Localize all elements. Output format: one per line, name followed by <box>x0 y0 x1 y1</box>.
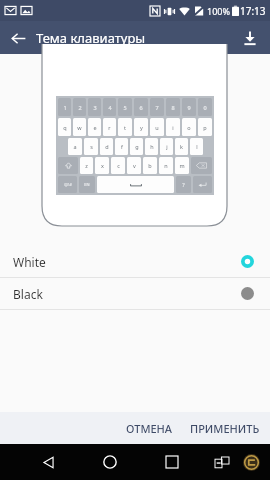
button[interactable]: r <box>103 118 116 136</box>
staticText: k <box>180 143 183 150</box>
button[interactable]: Back <box>30 444 66 480</box>
button[interactable]: 2 <box>73 98 86 116</box>
button[interactable]: 7 <box>150 98 164 116</box>
button[interactable]: o <box>182 118 196 136</box>
staticText: n <box>164 162 168 169</box>
staticText: 5 <box>123 104 127 111</box>
button[interactable]: y <box>134 118 148 136</box>
button[interactable]: ОТМЕНА <box>117 412 182 444</box>
button[interactable]: Black <box>0 278 270 309</box>
button[interactable]: White <box>0 246 270 277</box>
staticText: d <box>105 143 109 150</box>
button[interactable]: f <box>115 138 128 155</box>
staticText: 4 <box>108 104 112 111</box>
button[interactable]: b <box>143 157 157 174</box>
staticText: e <box>93 124 97 131</box>
staticText: ПРИМЕНИТЬ <box>190 421 260 436</box>
staticText: i <box>172 124 174 131</box>
button[interactable]: u <box>150 118 164 136</box>
button[interactable]: Backspace <box>191 157 212 174</box>
staticText: j <box>166 143 168 150</box>
staticText: 100% <box>207 5 230 17</box>
button[interactable]: n <box>159 157 173 174</box>
staticText: ? <box>182 181 185 188</box>
button[interactable]: Back <box>4 24 32 52</box>
button[interactable]: a <box>68 138 82 155</box>
staticText: m <box>179 162 185 169</box>
button[interactable]: s <box>84 138 98 155</box>
button[interactable]: 5 <box>118 98 132 116</box>
button[interactable]: i <box>166 118 180 136</box>
button[interactable]: 1 <box>58 98 71 116</box>
button[interactable]: Download <box>236 24 264 52</box>
button[interactable]: 3 <box>88 98 101 116</box>
staticText: Тема клавиатуры <box>36 29 146 47</box>
button[interactable]: ПРИМЕНИТЬ <box>182 412 270 444</box>
button[interactable]: c <box>111 157 125 174</box>
button[interactable]: p <box>198 118 212 136</box>
staticText: Black <box>13 286 241 302</box>
button[interactable]: l <box>190 138 203 155</box>
button[interactable]: j <box>160 138 173 155</box>
staticText: l <box>196 143 198 150</box>
button[interactable]: Home <box>92 444 128 480</box>
staticText: 1 <box>63 104 67 111</box>
button[interactable]: ? <box>176 176 191 193</box>
staticText: ☺!# <box>64 182 72 187</box>
button[interactable]: Shift <box>58 157 78 174</box>
button[interactable]: z <box>80 157 93 174</box>
staticText: w <box>77 124 82 131</box>
button[interactable]: q <box>58 118 71 136</box>
button[interactable]: d <box>100 138 113 155</box>
staticText: 2 <box>78 104 82 111</box>
staticText: 8 <box>171 104 175 111</box>
staticText: h <box>150 143 154 150</box>
staticText: 17:13 <box>240 4 266 18</box>
button[interactable]: e <box>88 118 101 136</box>
staticText: f <box>121 143 123 150</box>
staticText: s <box>90 143 93 150</box>
staticText: p <box>203 124 207 131</box>
button[interactable]: Space <box>97 176 174 193</box>
staticText: White <box>13 254 241 270</box>
button[interactable]: g <box>130 138 143 155</box>
staticText: EN <box>84 182 90 187</box>
staticText: y <box>140 124 143 131</box>
button[interactable]: t <box>118 118 132 136</box>
staticText: 7 <box>155 104 159 111</box>
button[interactable]: ☺!# <box>58 176 77 193</box>
staticText: t <box>124 124 126 131</box>
button[interactable]: Enter <box>193 176 212 193</box>
staticText: b <box>148 162 152 169</box>
staticText: r <box>108 124 111 131</box>
staticText: x <box>101 162 104 169</box>
staticText: g <box>135 143 139 150</box>
staticText: z <box>85 162 88 169</box>
button[interactable]: x <box>95 157 109 174</box>
button[interactable]: 4 <box>103 98 116 116</box>
button[interactable]: m <box>175 157 189 174</box>
staticText: v <box>133 162 136 169</box>
button[interactable]: Split screen <box>206 446 238 478</box>
staticText: a <box>73 143 77 150</box>
button[interactable]: h <box>145 138 158 155</box>
staticText: 6 <box>139 104 143 111</box>
button[interactable]: w <box>73 118 86 136</box>
button[interactable]: 0 <box>198 98 212 116</box>
staticText: 9 <box>187 104 191 111</box>
button[interactable]: k <box>175 138 188 155</box>
staticText: o <box>187 124 191 131</box>
staticText: u <box>155 124 159 131</box>
button[interactable]: v <box>127 157 141 174</box>
staticText: 3 <box>93 104 97 111</box>
button[interactable]: 6 <box>134 98 148 116</box>
staticText: 0 <box>203 104 207 111</box>
button[interactable]: 8 <box>166 98 180 116</box>
staticText: c <box>117 162 120 169</box>
button[interactable]: EN <box>79 176 95 193</box>
button[interactable]: 9 <box>182 98 196 116</box>
staticText: ОТМЕНА <box>126 421 173 436</box>
staticText: q <box>63 124 67 131</box>
button[interactable]: Recent apps <box>154 444 190 480</box>
